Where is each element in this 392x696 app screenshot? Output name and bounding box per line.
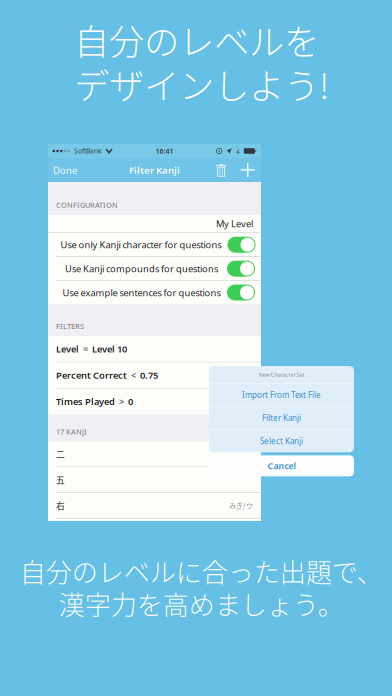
staticText: < — [127, 369, 140, 381]
staticText: 0 — [128, 395, 133, 408]
staticText: Percent Correct — [56, 369, 127, 381]
staticText: SoftBank — [74, 146, 102, 156]
button[interactable]: Use Kanji compounds for questions — [48, 257, 261, 280]
staticText: Done — [53, 163, 77, 177]
button[interactable]: Add — [233, 158, 261, 182]
button[interactable]: Cancel — [209, 455, 354, 476]
staticText: > — [115, 395, 128, 408]
button[interactable]: Use only Kanji character for questions — [48, 233, 261, 256]
staticText: Filter Kanji — [262, 412, 301, 423]
staticText: 五 — [56, 473, 65, 486]
staticText: 右 — [56, 499, 65, 512]
staticText: Cancel — [267, 460, 295, 472]
staticText: みぎ/ウ — [229, 500, 253, 510]
staticText: Times Played — [56, 395, 115, 408]
button[interactable]: Level — [48, 336, 261, 362]
staticText: New Character Set — [258, 371, 304, 378]
staticText: Import From Text File — [242, 389, 321, 400]
staticText: Use Kanji compounds for questions — [65, 262, 218, 275]
staticText: 二 — [56, 448, 65, 460]
staticText: CONFIGURATION — [56, 200, 118, 210]
staticText: FILTERS — [56, 321, 84, 331]
button[interactable]: Select Kanji — [209, 430, 354, 452]
button[interactable]: My Level — [48, 215, 261, 232]
staticText: Select Kanji — [260, 436, 303, 446]
button[interactable]: Delete — [208, 158, 233, 182]
button[interactable]: 右 — [48, 493, 261, 518]
button[interactable]: 二 — [48, 442, 261, 467]
staticText: 17 KANJI — [56, 426, 87, 437]
button[interactable]: 五 — [48, 467, 261, 492]
button[interactable]: Done — [48, 158, 85, 182]
staticText: 自分のレベルに合った出題で、 漢字力を高めましょう。 — [19, 552, 382, 622]
staticText: Use only Kanji character for questions — [60, 238, 221, 251]
button[interactable]: Percent Correct — [48, 362, 261, 388]
button[interactable]: Filter Kanji — [209, 407, 354, 429]
staticText: 16:41 — [155, 146, 173, 156]
staticText: Use example sentences for questions — [62, 286, 220, 299]
button[interactable]: Times Played — [48, 389, 261, 414]
staticText: My Level — [216, 217, 253, 230]
staticText: = — [79, 343, 92, 355]
staticText: Filter Kanji — [129, 163, 180, 177]
button[interactable]: Use example sentences for questions — [48, 281, 261, 304]
staticText: 自分のレベルを デザインしよう! — [74, 14, 329, 109]
staticText: Level — [56, 343, 79, 355]
button[interactable]: Import From Text File — [209, 384, 354, 406]
staticText: Level 10 — [92, 343, 127, 355]
staticText: 0.75 — [140, 369, 158, 381]
